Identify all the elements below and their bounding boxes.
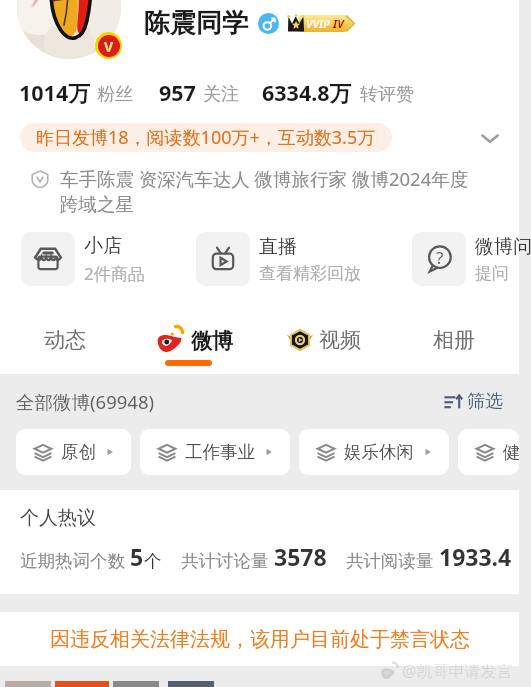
button[interactable]: 微博 (129, 316, 259, 364)
staticText: 个人热议 (20, 506, 96, 530)
button[interactable]: Avatar (17, 0, 121, 59)
staticText: 微博 (191, 328, 233, 354)
staticText: 个 (144, 550, 162, 572)
staticText: 2件商品 (84, 262, 145, 285)
staticText: 提问 (475, 263, 509, 284)
staticText: 关注 (203, 83, 239, 106)
staticText: 1014万 (19, 78, 90, 107)
staticText: 小店 (84, 234, 122, 258)
button[interactable]: 视频 (259, 316, 389, 364)
button[interactable]: 动态 (0, 316, 129, 364)
staticText: 1933.4万 (439, 541, 519, 572)
button[interactable]: ? (412, 232, 531, 286)
button[interactable]: 因违反相关法律法规，该用户目前处于禁言状态 (0, 612, 519, 666)
staticText: ? (436, 246, 444, 269)
button[interactable]: 个人热议 (0, 490, 519, 594)
staticText: 直播 (259, 235, 297, 259)
button[interactable]: 相册 (389, 316, 519, 364)
staticText: 近期热词个数 (20, 550, 125, 572)
staticText: 视频 (319, 327, 361, 353)
button[interactable]: 娱乐休闲 (299, 429, 449, 475)
staticText: 3578 (274, 541, 327, 572)
staticText: 陈震同学 (144, 7, 248, 40)
staticText: 微博问答 (475, 235, 531, 259)
staticText: 相册 (433, 327, 475, 353)
staticText: 车手陈震 资深汽车达人 微博旅行家 微博2024年度跨域之星 (60, 166, 478, 217)
staticText: @凯哥申请发言 (402, 660, 513, 682)
button[interactable]: 昨日发博18，阅读数100万+，互动数3.5万 (20, 123, 392, 152)
staticText: 昨日发博18，阅读数100万+，互动数3.5万 (36, 125, 376, 150)
staticText: 原创 (61, 441, 96, 463)
staticText: 娱乐休闲 (344, 441, 414, 463)
button[interactable]: VVIP (287, 13, 354, 34)
staticText: 共计阅读量 (346, 550, 434, 572)
staticText: 查看精彩回放 (259, 263, 361, 284)
staticText: 转评赞 (360, 83, 414, 106)
button[interactable]: 筛选 (444, 390, 503, 413)
staticText: 因违反相关法律法规，该用户目前处于禁言状态 (50, 627, 470, 652)
button[interactable]: 直播 (196, 232, 361, 286)
staticText: VVIP (306, 16, 330, 31)
staticText: 6334.8万 (262, 78, 352, 107)
staticText: IV (333, 16, 344, 31)
button[interactable]: 健康 (458, 429, 519, 475)
button[interactable]: 小店 (21, 232, 145, 286)
staticText: 5 (130, 541, 144, 572)
button[interactable]: Expand (478, 126, 502, 150)
button[interactable]: 工作事业 (140, 429, 290, 475)
staticText: 全部微博(69948) (16, 389, 155, 414)
staticText: 共计讨论量 (181, 550, 269, 572)
staticText: 动态 (44, 327, 86, 353)
staticText: 957 (159, 78, 196, 107)
staticText: 粉丝 (97, 83, 133, 106)
staticText: 工作事业 (185, 441, 255, 463)
staticText: 筛选 (467, 390, 503, 413)
button[interactable]: 原创 (16, 429, 131, 475)
staticText: V (104, 37, 114, 56)
